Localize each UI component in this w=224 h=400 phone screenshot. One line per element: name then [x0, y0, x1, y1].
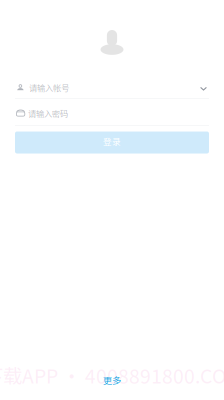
staticText: 下载APP · 4008891800.COM	[0, 361, 224, 389]
staticText: 请输入帐号	[29, 82, 69, 94]
button[interactable]: 请输入帐号	[15, 78, 209, 99]
staticText: 请输入密码	[28, 107, 68, 119]
button[interactable]: 登录	[15, 131, 209, 153]
staticText: 更多	[103, 373, 121, 387]
button[interactable]: 请输入密码	[15, 104, 209, 126]
button[interactable]: 更多	[101, 374, 123, 385]
staticText: 登录	[103, 135, 121, 147]
